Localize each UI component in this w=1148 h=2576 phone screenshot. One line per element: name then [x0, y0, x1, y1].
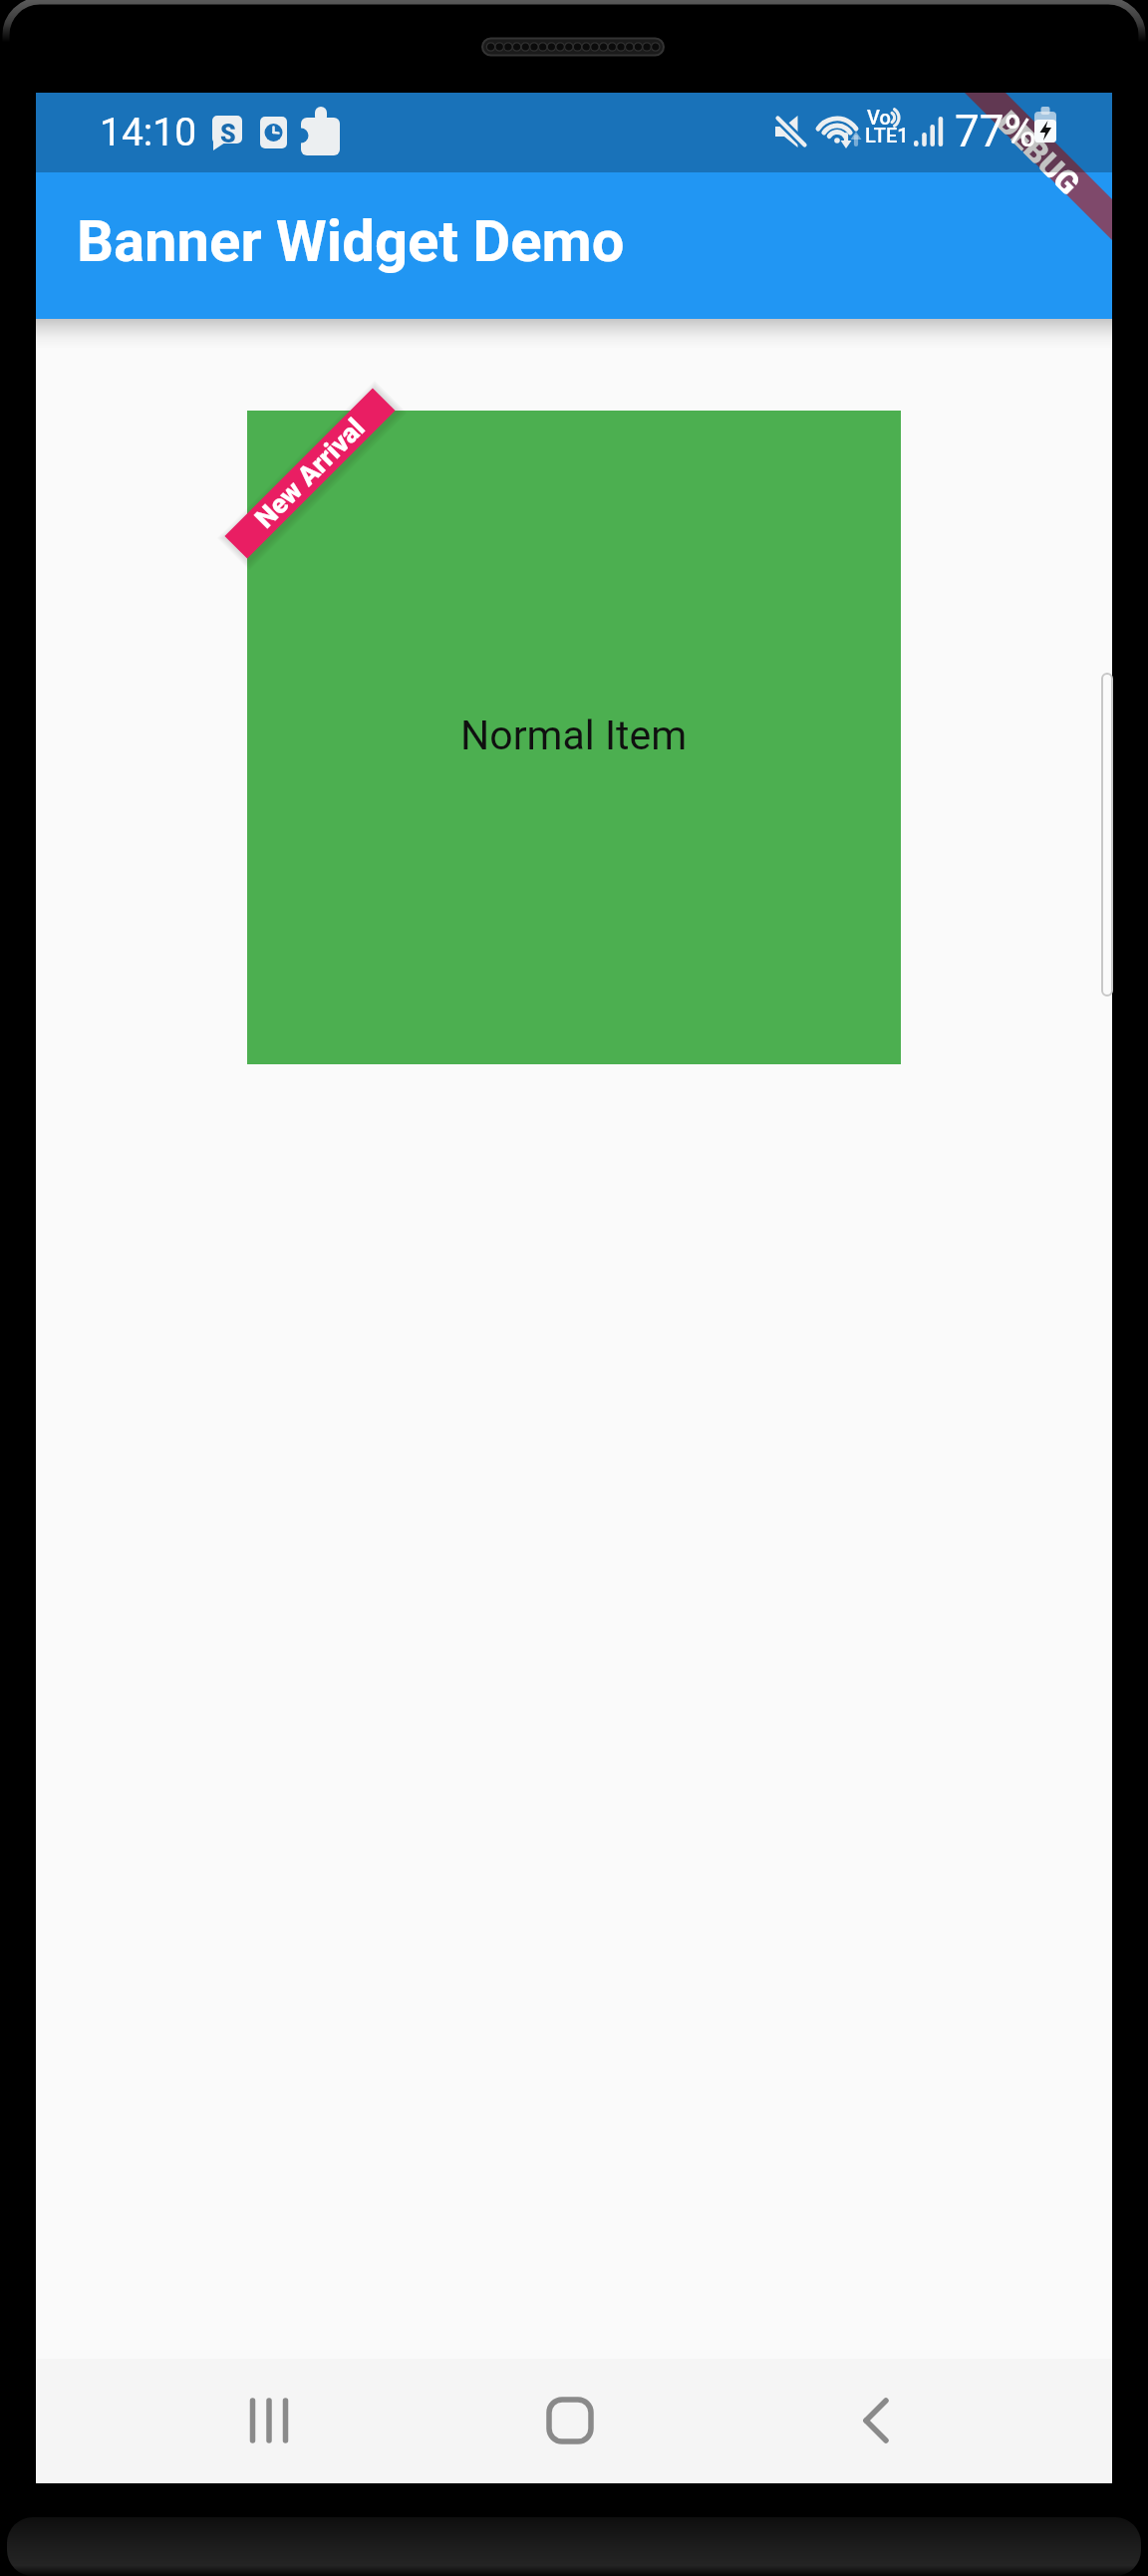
staticText: 14:10	[100, 110, 197, 155]
staticText: LTE1	[865, 124, 909, 146]
staticText: New Arrival	[249, 412, 371, 535]
staticText: 77%	[955, 106, 1036, 157]
staticText: Vo	[867, 106, 891, 129]
button[interactable]: Home	[500, 2381, 640, 2460]
staticText: DEBUG	[994, 103, 1087, 196]
staticText: Normal Item	[460, 712, 688, 759]
button[interactable]: Back	[802, 2381, 942, 2460]
staticText: S	[220, 120, 236, 148]
staticText: Banner Widget Demo	[77, 207, 625, 275]
button[interactable]: Recent apps	[199, 2381, 339, 2460]
button[interactable]: Normal Item	[247, 411, 901, 1064]
